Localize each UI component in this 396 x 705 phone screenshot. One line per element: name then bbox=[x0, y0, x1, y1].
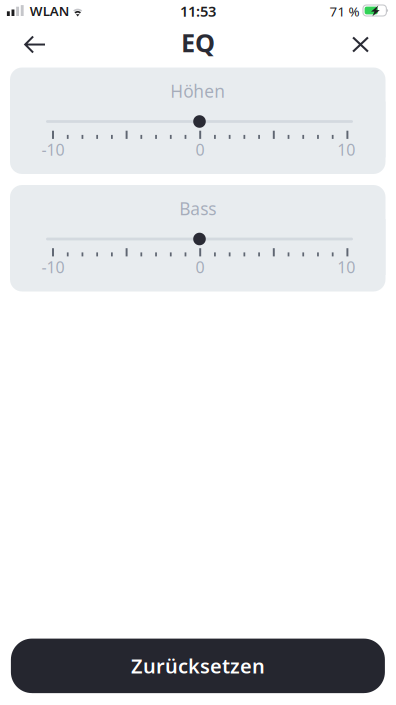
button[interactable]: Zurücksetzen bbox=[11, 639, 385, 693]
button[interactable]: Back bbox=[12, 23, 58, 65]
staticText: 0 bbox=[196, 256, 205, 278]
staticText: -10 bbox=[41, 256, 64, 278]
staticText: 10 bbox=[337, 256, 355, 278]
staticText: -10 bbox=[41, 139, 64, 160]
staticText: 10 bbox=[337, 139, 355, 160]
staticText: Zurücksetzen bbox=[131, 653, 265, 679]
staticText: EQ bbox=[181, 26, 215, 59]
staticText: 71 % bbox=[329, 2, 359, 20]
staticText: 0 bbox=[196, 139, 205, 160]
staticText: 11:53 bbox=[180, 1, 216, 21]
button[interactable]: Höhen level, 0 bbox=[10, 101, 385, 157]
button[interactable]: Close bbox=[337, 23, 383, 65]
staticText: WLAN bbox=[30, 2, 70, 20]
staticText: Höhen bbox=[170, 80, 225, 103]
staticText: Bass bbox=[179, 197, 216, 220]
button[interactable]: Bass level, 0 bbox=[10, 219, 385, 275]
